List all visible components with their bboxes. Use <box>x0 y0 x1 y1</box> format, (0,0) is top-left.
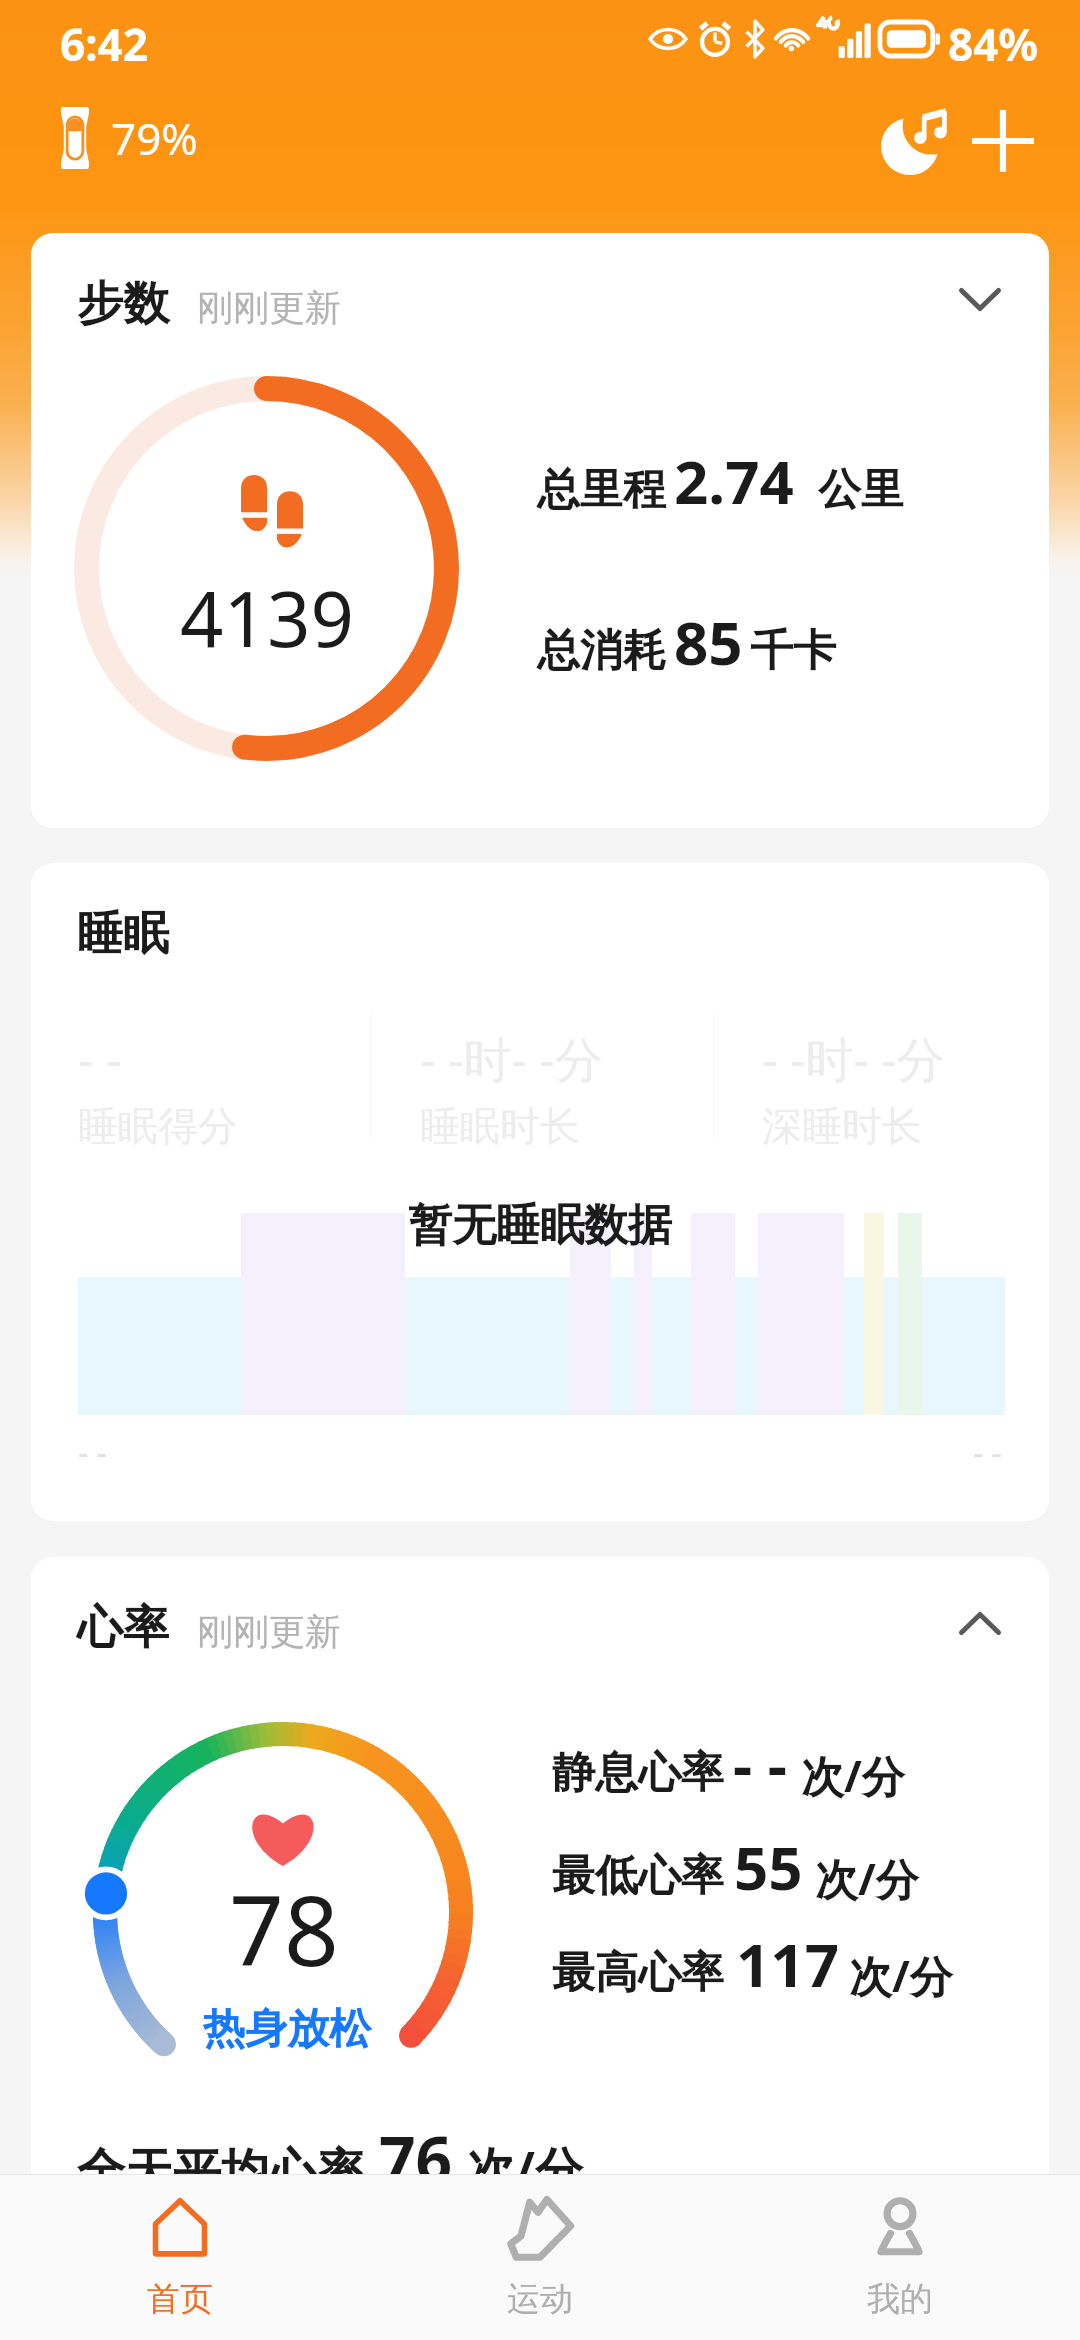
staticText: - -时- -分 <box>762 1026 945 1092</box>
staticText: 次/分 <box>815 1849 919 1908</box>
staticText: 睡眠时长 <box>420 1101 580 1151</box>
staticText: 首页 <box>147 2278 213 2320</box>
staticText: 4139 <box>180 566 354 670</box>
staticText: - - <box>78 1431 107 1475</box>
staticText: 84% <box>948 14 1039 74</box>
staticText: - - <box>78 1026 122 1091</box>
staticText: 总里程 <box>537 463 666 517</box>
staticText: 心率 <box>77 1599 169 1657</box>
button[interactable]: 心率 <box>31 1557 1049 2257</box>
staticText: 运动 <box>507 2278 573 2320</box>
staticText: 总消耗 <box>537 624 666 678</box>
staticText: 睡眠 <box>77 905 169 963</box>
staticText: 次/分 <box>467 2136 583 2202</box>
staticText: 步数 <box>77 275 169 333</box>
staticText: 睡眠得分 <box>78 1101 238 1151</box>
staticText: 79% <box>111 108 198 168</box>
button[interactable]: 运动 <box>360 2176 720 2338</box>
staticText: 公里 <box>818 463 904 517</box>
staticText: 我的 <box>867 2278 933 2320</box>
staticText: 2.74 <box>674 440 794 522</box>
staticText: 千卡 <box>750 624 836 678</box>
staticText: 78 <box>229 1863 339 1994</box>
staticText: 55 <box>734 1826 803 1908</box>
button[interactable]: Sleep music <box>872 96 962 186</box>
button[interactable]: Expand heart rate <box>938 1581 1022 1665</box>
staticText: 刚刚更新 <box>197 1609 341 1654</box>
staticText: 全天平均心率 <box>77 2142 365 2202</box>
staticText: 刚刚更新 <box>197 285 341 330</box>
staticText: - - <box>733 1723 787 1805</box>
staticText: 静息心率 <box>552 1746 724 1800</box>
staticText: 次/分 <box>801 1746 905 1805</box>
staticText: 最低心率 <box>552 1849 724 1903</box>
staticText: 次/分 <box>849 1946 953 2005</box>
button[interactable]: 睡眠 <box>31 863 1049 1521</box>
staticText: 76 <box>379 2115 453 2202</box>
button[interactable]: Add <box>958 96 1048 186</box>
button[interactable]: Collapse steps <box>938 257 1022 341</box>
staticText: - -时- -分 <box>420 1026 603 1092</box>
staticText: - - <box>973 1431 1002 1475</box>
button[interactable]: 我的 <box>720 2176 1080 2338</box>
button[interactable]: 步数 <box>31 233 1049 828</box>
staticText: 117 <box>736 1923 839 2005</box>
button[interactable]: 首页 <box>0 2176 360 2338</box>
staticText: 热身放松 <box>203 2003 371 2056</box>
staticText: 6:42 <box>60 14 148 74</box>
button[interactable]: 79% <box>49 95 210 181</box>
staticText: 最高心率 <box>552 1946 724 2000</box>
staticText: 深睡时长 <box>762 1101 922 1151</box>
staticText: 85 <box>674 601 743 683</box>
staticText: 暂无睡眠数据 <box>408 1198 672 1253</box>
